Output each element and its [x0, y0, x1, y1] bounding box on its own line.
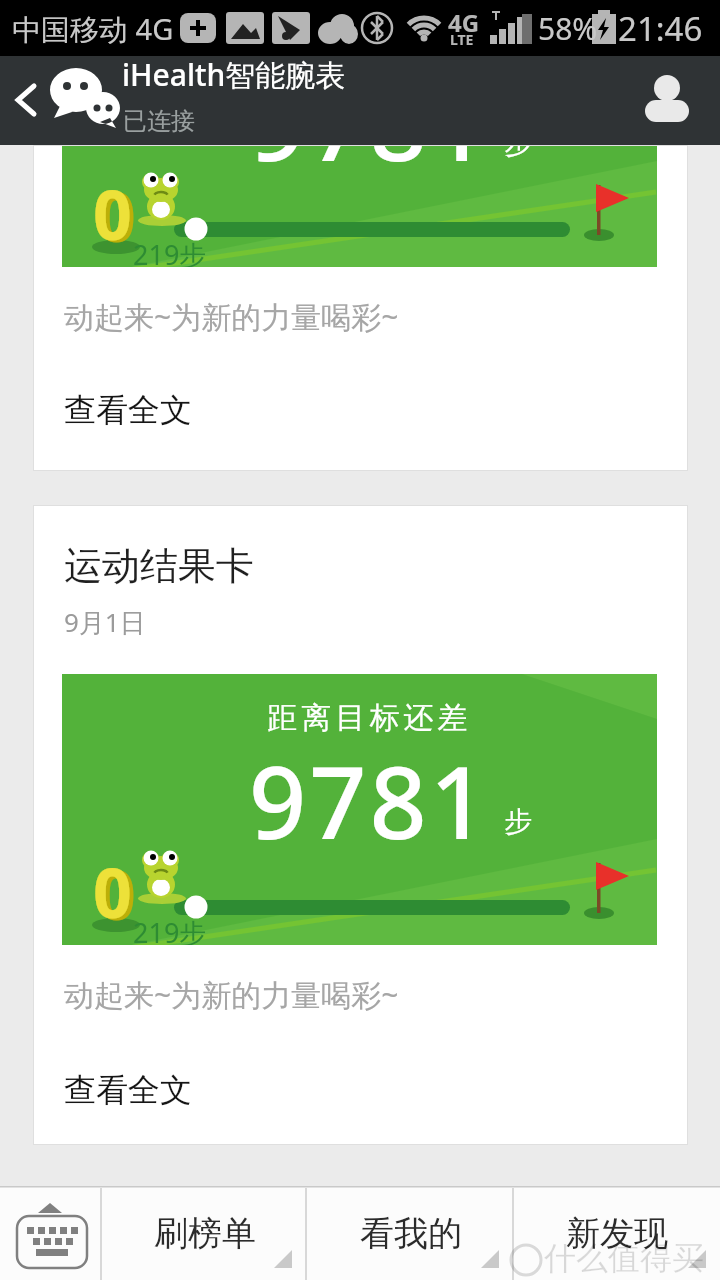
button[interactable]: 新发现	[514, 1186, 720, 1280]
staticText: 动起来~为新的力量喝彩~	[64, 296, 399, 337]
staticText: 0	[97, 847, 136, 940]
button[interactable]: 刷榜单	[101, 1186, 308, 1280]
staticText: 0	[93, 167, 132, 260]
staticText: 步	[504, 145, 532, 161]
staticText: 0	[93, 845, 132, 938]
button[interactable]	[642, 73, 694, 125]
staticText: 9781	[82, 732, 657, 868]
staticText: 219步	[133, 914, 207, 945]
staticText: LTE	[450, 30, 474, 49]
staticText: 中国移动 4G	[12, 9, 174, 49]
staticText: 219步	[133, 236, 207, 267]
button[interactable]: 看我的	[308, 1186, 514, 1280]
staticText: 58%	[538, 8, 598, 49]
staticText: 运动结果卡	[64, 542, 254, 590]
staticText: 动起来~为新的力量喝彩~	[64, 974, 399, 1015]
button[interactable]	[6, 82, 54, 130]
staticText: 4G	[448, 6, 480, 39]
staticText: iHealth智能腕表	[122, 54, 346, 95]
staticText: 看我的	[360, 1212, 462, 1255]
staticText: 步	[504, 804, 532, 839]
button[interactable]	[0, 1186, 101, 1280]
staticText: 9月1日	[64, 604, 146, 640]
button[interactable]: 查看全文	[64, 1070, 192, 1110]
staticText: 21:46	[618, 6, 703, 51]
button[interactable]: 查看全文	[64, 390, 192, 430]
staticText: 什么值得买	[544, 1238, 704, 1278]
staticText: 0	[97, 169, 136, 262]
staticText: 距离目标还差	[82, 699, 657, 737]
staticText: 已连接	[123, 106, 195, 136]
staticText: 新发现	[566, 1212, 668, 1255]
staticText: 9781	[82, 145, 657, 190]
staticText: 刷榜单	[154, 1212, 256, 1255]
